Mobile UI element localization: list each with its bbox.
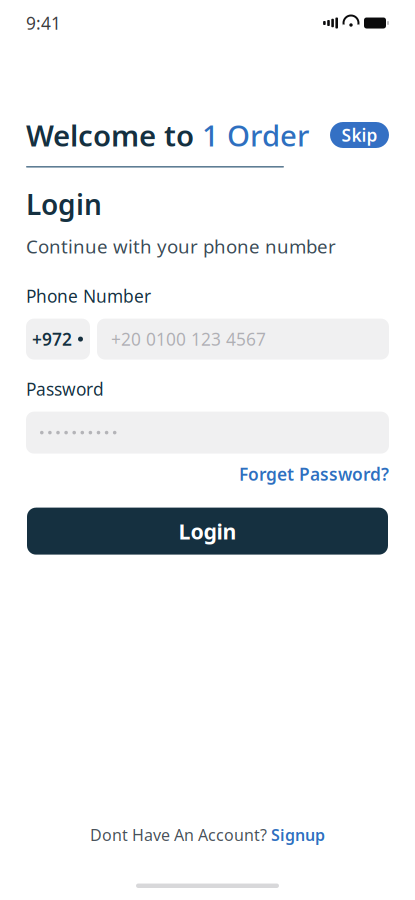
staticText: Welcome to — [26, 115, 202, 154]
staticText: Forget Password? — [239, 463, 389, 486]
staticText: Signup — [271, 824, 325, 845]
button[interactable]: Dont Have An Account? — [90, 824, 325, 845]
staticText: Phone Number — [26, 285, 151, 308]
staticText: Password — [26, 378, 104, 401]
staticText: Login — [178, 517, 236, 545]
staticText: +20 0100 123 4567 — [111, 328, 266, 351]
button[interactable]: Forget Password? — [239, 463, 389, 486]
staticText: Skip — [341, 123, 377, 146]
button[interactable]: Skip — [330, 122, 389, 148]
staticText: +972 — [32, 328, 72, 351]
button[interactable]: Login — [27, 508, 388, 555]
staticText: Dont Have An Account? — [90, 824, 267, 845]
staticText: 1 Order — [202, 115, 309, 154]
staticText: Login — [26, 186, 102, 223]
staticText: Continue with your phone number — [26, 234, 336, 259]
staticText: 9:41 — [26, 11, 61, 34]
button[interactable] — [26, 412, 389, 454]
button[interactable]: +972 — [26, 319, 90, 360]
button[interactable]: +20 0100 123 4567 — [97, 319, 389, 360]
